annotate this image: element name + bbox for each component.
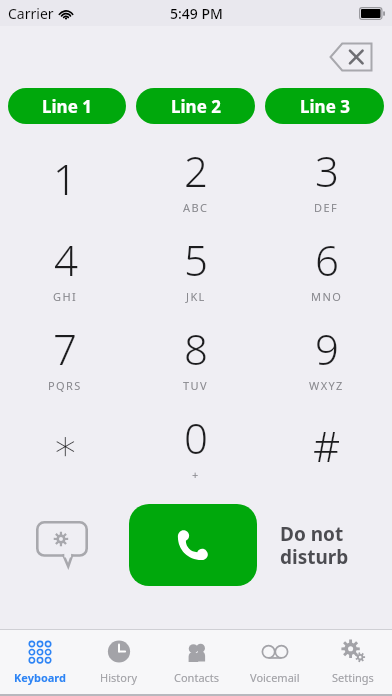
staticText: Line 1 <box>42 95 92 118</box>
button[interactable]: 9 <box>261 316 392 405</box>
button[interactable]: Settings <box>314 630 392 694</box>
button[interactable]: 2 <box>130 138 261 227</box>
button[interactable]: Dial assist settings <box>32 517 92 573</box>
staticText: 5 <box>184 231 208 288</box>
staticText: Line 2 <box>171 95 221 118</box>
button[interactable]: History <box>79 630 158 694</box>
staticText: 0 <box>184 409 208 466</box>
button[interactable]: Contacts <box>158 630 236 694</box>
staticText: # <box>313 417 341 474</box>
staticText: History <box>100 670 138 685</box>
staticText: Do not disturb <box>280 521 384 570</box>
button[interactable]: 1 <box>0 138 130 227</box>
staticText: Keyboard <box>14 670 66 685</box>
staticText: GHI <box>53 289 78 304</box>
button[interactable]: 3 <box>261 138 392 227</box>
button[interactable]: Line 1 <box>8 88 126 124</box>
staticText: ABC <box>183 200 209 215</box>
staticText: PQRS <box>48 378 82 393</box>
button[interactable]: Line 2 <box>136 88 255 124</box>
button[interactable]: 7 <box>0 316 130 405</box>
button[interactable]: 0 <box>130 405 261 494</box>
button[interactable]: Line 3 <box>265 88 384 124</box>
button[interactable]: # <box>261 405 392 494</box>
staticText: Contacts <box>174 670 220 685</box>
staticText: Settings <box>332 670 374 685</box>
staticText: Voicemail <box>250 670 300 685</box>
staticText: JKL <box>186 289 206 304</box>
button[interactable]: 4 <box>0 227 130 316</box>
staticText: 7 <box>53 320 77 377</box>
button[interactable]: ∗ <box>0 405 130 494</box>
staticText: + <box>192 467 200 482</box>
button[interactable]: Do not disturb <box>280 500 384 590</box>
staticText: Carrier <box>8 4 54 23</box>
staticText: 4 <box>54 231 78 288</box>
staticText: 2 <box>184 142 208 199</box>
staticText: MNO <box>311 289 343 304</box>
staticText: 5:49 PM <box>170 4 223 23</box>
staticText: 3 <box>315 142 339 199</box>
staticText: TUV <box>183 378 208 393</box>
staticText: ∗ <box>52 421 79 470</box>
button[interactable]: Call <box>129 504 257 586</box>
staticText: Line 3 <box>300 95 350 118</box>
staticText: DEF <box>314 200 339 215</box>
staticText: 6 <box>315 231 339 288</box>
staticText: 1 <box>53 150 77 207</box>
staticText: WXYZ <box>309 378 344 393</box>
staticText: 8 <box>184 320 208 377</box>
button[interactable]: 5 <box>130 227 261 316</box>
button[interactable]: Backspace <box>324 37 378 77</box>
staticText: 9 <box>315 320 339 377</box>
button[interactable]: Keyboard <box>0 630 79 694</box>
button[interactable]: 6 <box>261 227 392 316</box>
button[interactable]: 8 <box>130 316 261 405</box>
button[interactable]: Voicemail <box>236 630 314 694</box>
